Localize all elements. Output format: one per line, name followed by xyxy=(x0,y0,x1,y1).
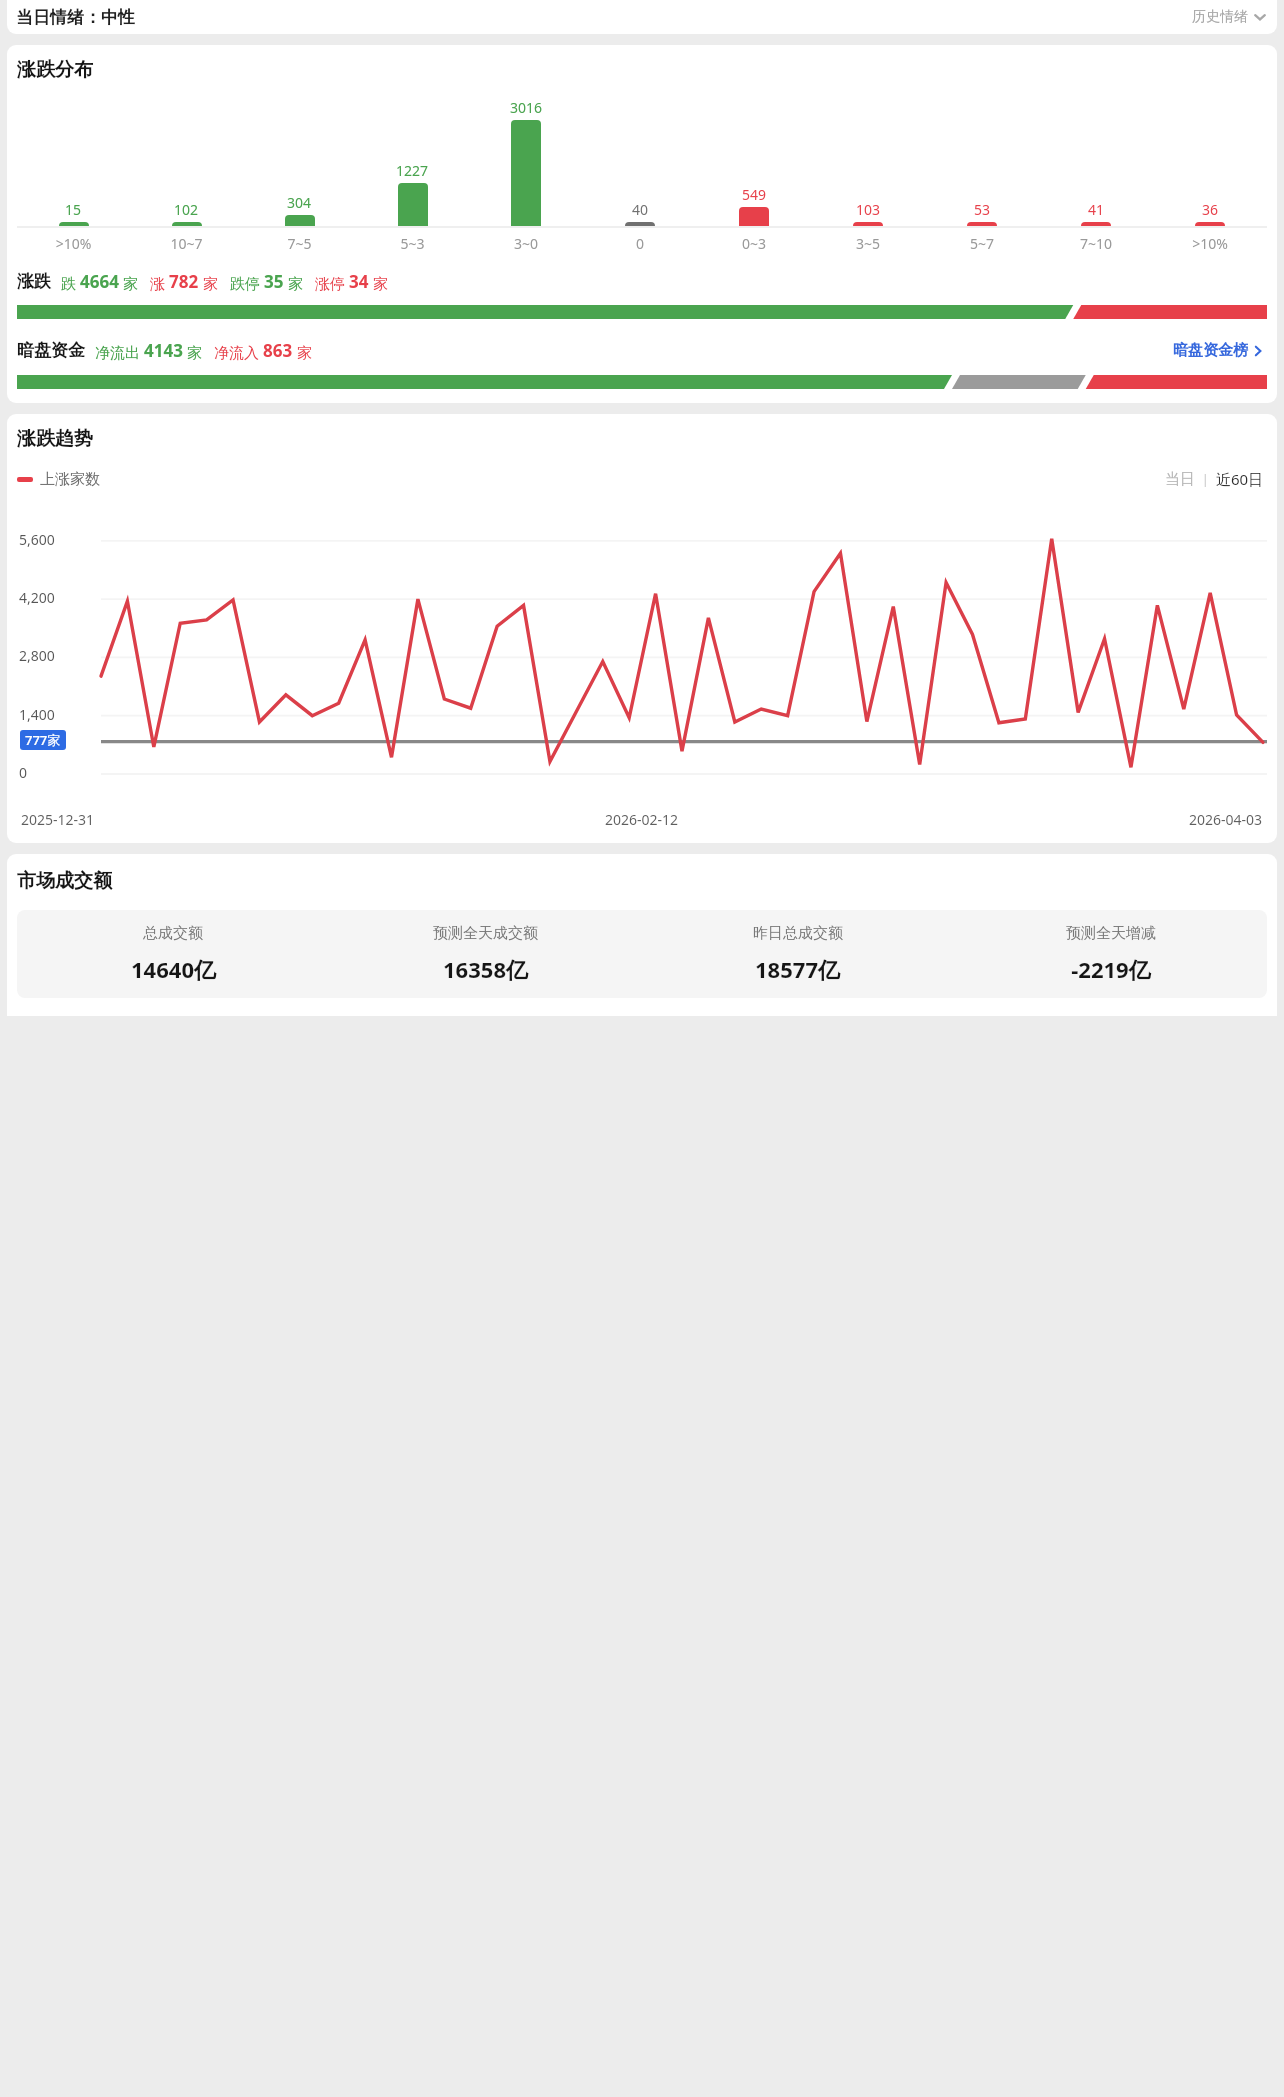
staticText: 历史情绪 xyxy=(1192,8,1248,26)
staticText: | xyxy=(1202,471,1209,487)
staticText: 跌停 xyxy=(230,273,264,293)
staticText: 总成交额 xyxy=(143,924,203,943)
staticText: 昨日总成交额 xyxy=(753,924,843,943)
staticText: 16358亿 xyxy=(443,954,528,984)
staticText: 3~0 xyxy=(469,234,583,253)
staticText: 15 xyxy=(65,200,82,219)
staticText: 0 xyxy=(19,763,28,782)
button[interactable]: 近60日 xyxy=(1213,466,1267,492)
staticText: 36 xyxy=(1202,200,1219,219)
staticText: 5,600 xyxy=(19,530,55,549)
staticText: 14640亿 xyxy=(131,954,216,984)
staticText: 暗盘资金 xyxy=(17,340,85,361)
staticText: 预测全天成交额 xyxy=(433,924,538,943)
staticText: 3016 xyxy=(510,98,543,117)
staticText: 上涨家数 xyxy=(40,470,100,489)
staticText: 1,400 xyxy=(19,705,55,724)
button[interactable]: 历史情绪 xyxy=(1188,4,1270,30)
staticText: 103 xyxy=(856,200,881,219)
staticText: 预测全天增减 xyxy=(1066,924,1156,943)
staticText: 304 xyxy=(287,193,312,212)
staticText: 102 xyxy=(174,200,199,219)
staticText: 2026-02-12 xyxy=(605,810,679,829)
staticText: 当日 xyxy=(1165,470,1195,489)
staticText: 10~7 xyxy=(130,234,243,253)
staticText: 53 xyxy=(974,200,991,219)
other: 展开历史情绪 xyxy=(1254,11,1266,23)
staticText: >10% xyxy=(17,234,130,253)
staticText: 净流入 xyxy=(214,342,263,362)
staticText: 2,800 xyxy=(19,646,55,665)
staticText: 4143 xyxy=(144,339,183,362)
staticText: 1227 xyxy=(396,161,429,180)
staticText: 782 xyxy=(169,270,199,293)
staticText: 18577亿 xyxy=(755,954,840,984)
button[interactable]: 当日 xyxy=(1162,467,1198,492)
staticText: -2219亿 xyxy=(1071,954,1151,984)
staticText: 2026-04-03 xyxy=(1189,810,1263,829)
staticText: 涨跌分布 xyxy=(17,58,93,82)
staticText: 家 xyxy=(293,342,312,362)
staticText: >10% xyxy=(1153,234,1267,253)
staticText: 7~5 xyxy=(243,234,356,253)
staticText: 涨停 xyxy=(315,273,349,293)
staticText: 549 xyxy=(742,185,767,204)
staticText: 0 xyxy=(583,234,697,253)
staticText: 40 xyxy=(632,200,649,219)
staticText: 863 xyxy=(263,339,293,362)
staticText: 当日情绪：中性 xyxy=(16,7,135,28)
staticText: 0~3 xyxy=(697,234,811,253)
staticText: 家 xyxy=(369,273,388,293)
staticText: 35 xyxy=(264,270,284,293)
staticText: 家 xyxy=(119,273,138,293)
staticText: 34 xyxy=(349,270,369,293)
staticText: 涨跌趋势 xyxy=(17,427,93,451)
button[interactable]: 暗盘资金榜 xyxy=(1170,338,1267,363)
staticText: 7~10 xyxy=(1039,234,1153,253)
staticText: 近60日 xyxy=(1216,469,1264,489)
staticText: 市场成交额 xyxy=(17,869,112,893)
staticText: 家 xyxy=(183,342,202,362)
staticText: 净流出 xyxy=(95,342,144,362)
staticText: 777家 xyxy=(25,731,61,749)
staticText: 5~3 xyxy=(356,234,469,253)
staticText: 5~7 xyxy=(925,234,1039,253)
staticText: 涨跌 xyxy=(17,271,51,292)
staticText: 41 xyxy=(1088,200,1105,219)
staticText: 家 xyxy=(199,273,218,293)
staticText: 4,200 xyxy=(19,588,55,607)
staticText: 跌 xyxy=(61,273,80,293)
staticText: 4664 xyxy=(80,270,119,293)
staticText: 3~5 xyxy=(811,234,925,253)
staticText: 暗盘资金榜 xyxy=(1173,341,1248,360)
staticText: 家 xyxy=(284,273,303,293)
staticText: 2025-12-31 xyxy=(21,810,95,829)
staticText: 涨 xyxy=(150,273,169,293)
